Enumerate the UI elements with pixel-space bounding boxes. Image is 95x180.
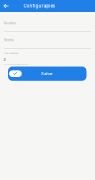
button[interactable]: Back (0, 0, 12, 12)
staticText: Usuário (4, 21, 16, 25)
staticText: Salvar (41, 71, 53, 76)
staticText: Senha (4, 38, 14, 42)
button[interactable]: Salvar (8, 66, 86, 81)
staticText: Configurações (23, 3, 54, 9)
staticText: 0 (4, 58, 6, 62)
staticText: Cód. Empresa (4, 52, 18, 54)
